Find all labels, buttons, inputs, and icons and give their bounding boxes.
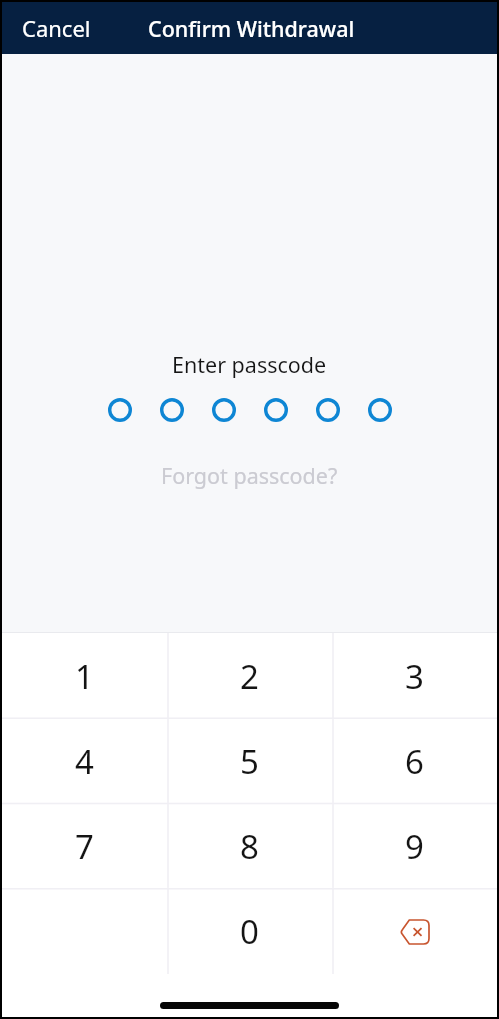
- button[interactable]: 2: [167, 633, 332, 719]
- staticText: Forgot passcode?: [161, 461, 338, 490]
- staticText: 8: [240, 824, 259, 869]
- button[interactable]: Backspace, delete last digit: [332, 889, 497, 974]
- button[interactable]: 9: [332, 804, 497, 889]
- button[interactable]: 1: [2, 633, 167, 719]
- button[interactable]: 3: [332, 633, 497, 719]
- button[interactable]: 4: [2, 719, 167, 804]
- button[interactable]: 7: [2, 804, 167, 889]
- staticText: Enter passcode: [172, 350, 327, 379]
- staticText: 0: [240, 909, 259, 954]
- staticText: 2: [240, 654, 259, 699]
- staticText: 1: [75, 654, 94, 699]
- button[interactable]: 8: [167, 804, 332, 889]
- staticText: 7: [75, 824, 94, 869]
- button[interactable]: 0: [167, 889, 332, 974]
- staticText: 5: [240, 739, 259, 784]
- button[interactable]: Cancel: [2, 2, 111, 54]
- button[interactable]: Forgot passcode?: [151, 455, 348, 496]
- button[interactable]: 5: [167, 719, 332, 804]
- staticText: Cancel: [22, 13, 91, 43]
- button[interactable]: 6: [332, 719, 497, 804]
- staticText: 6: [405, 739, 424, 784]
- staticText: 3: [405, 654, 424, 699]
- staticText: Confirm Withdrawal: [148, 14, 355, 43]
- staticText: 4: [75, 739, 94, 784]
- staticText: 9: [405, 824, 424, 869]
